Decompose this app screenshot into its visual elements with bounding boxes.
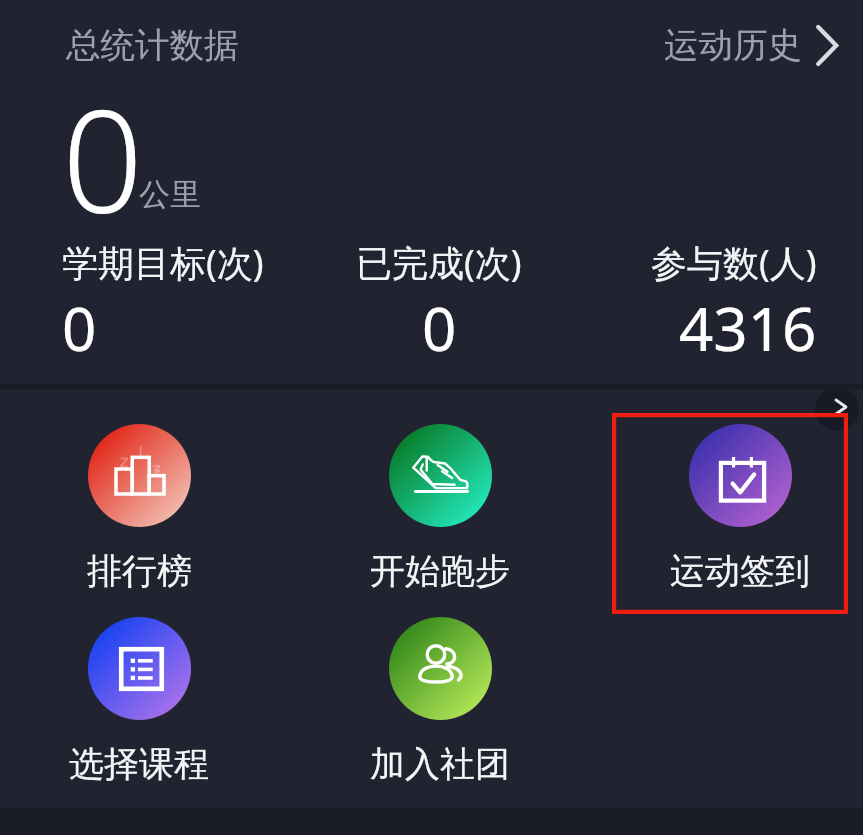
button[interactable]: 加入社团	[360, 617, 520, 792]
button[interactable]: 已完成(次)	[313, 238, 565, 369]
button[interactable]: Next page	[815, 387, 859, 431]
button[interactable]: 开始跑步	[360, 424, 520, 599]
staticText: 0	[62, 61, 144, 254]
staticText: 0	[422, 287, 457, 369]
staticText: 加入社团	[370, 742, 510, 786]
staticText: 开始跑步	[370, 549, 510, 593]
staticText: 总统计数据	[66, 24, 239, 67]
button[interactable]: 参与数(人)	[565, 238, 817, 369]
staticText: 运动历史	[664, 24, 802, 67]
staticText: 参与数(人)	[651, 238, 817, 287]
button[interactable]: 选择课程	[59, 617, 219, 792]
staticText: 已完成(次)	[356, 238, 522, 287]
button[interactable]: 排行榜	[59, 424, 219, 599]
staticText: 4316	[679, 287, 817, 369]
staticText: 学期目标(次)	[62, 238, 264, 287]
staticText: 0	[62, 287, 97, 369]
staticText: 运动签到	[670, 549, 810, 593]
button[interactable]: 学期目标(次)	[62, 238, 313, 369]
staticText: 选择课程	[69, 742, 209, 786]
staticText: 排行榜	[87, 549, 192, 593]
staticText: 公里	[139, 175, 201, 214]
button[interactable]: 运动签到	[660, 424, 820, 599]
button[interactable]: 运动历史	[664, 24, 838, 67]
